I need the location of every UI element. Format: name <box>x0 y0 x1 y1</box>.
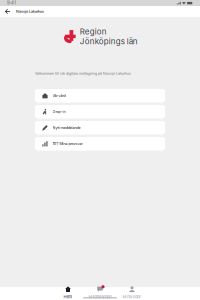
staticText: Mina sidor <box>122 294 141 299</box>
button[interactable]: Nytt meddelande <box>35 121 165 134</box>
button[interactable]: Back <box>2 6 13 17</box>
button[interactable]: Hem <box>52 285 84 299</box>
button[interactable]: 1177 Mina provsvar <box>35 137 165 150</box>
staticText: Region <box>80 27 107 36</box>
button[interactable]: Mina sidor <box>116 285 148 299</box>
staticText: Vår vård <box>52 94 65 98</box>
staticText: Nytt meddelande <box>52 126 80 130</box>
button[interactable]: Drop-in <box>35 105 165 118</box>
button[interactable]: Vår vård <box>35 89 165 102</box>
staticText: 1177 Mina provsvar <box>52 142 82 146</box>
staticText: Hem <box>63 294 72 299</box>
staticText: Välkommen till vår digitala mottagning p… <box>35 71 131 76</box>
staticText: Meddelanden <box>88 294 111 299</box>
staticText: Nässjö Läkarhus <box>16 9 44 14</box>
staticText: Jönköpings län <box>80 36 138 46</box>
staticText: Drop-in <box>52 110 65 114</box>
button[interactable]: Meddelanden <box>84 285 116 299</box>
staticText: 9:41 <box>7 0 16 6</box>
